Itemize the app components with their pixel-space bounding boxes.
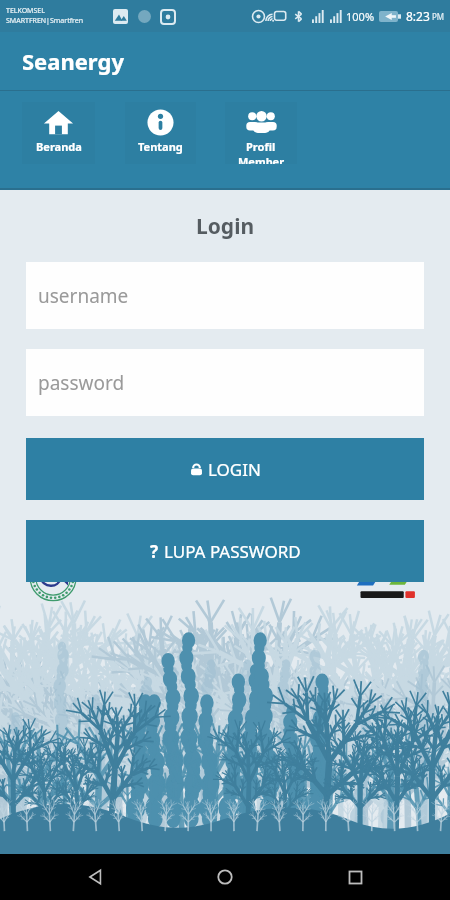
staticText: username — [38, 283, 129, 309]
staticText: Beranda — [36, 139, 82, 154]
button[interactable]: Home — [208, 860, 242, 894]
button[interactable]: Back — [78, 860, 112, 894]
staticText: TELKOMSEL — [6, 6, 45, 16]
staticText: SMARTFREN|Smartfren — [6, 16, 84, 26]
button[interactable]: Beranda — [22, 102, 95, 164]
staticText: 8:23 — [406, 8, 430, 24]
other: Tentang — [145, 107, 176, 138]
button[interactable]: password — [26, 349, 424, 416]
button[interactable]: LOGIN — [26, 438, 424, 500]
other: Profil Member — [246, 107, 277, 138]
staticText: Member — [238, 154, 285, 164]
button[interactable]: ? — [26, 520, 424, 582]
staticText: password — [38, 370, 125, 396]
staticText: 100% — [346, 9, 375, 24]
button[interactable]: Recent apps — [338, 860, 372, 894]
button[interactable]: username — [26, 262, 424, 329]
staticText: LUPA PASSWORD — [164, 540, 301, 563]
staticText: PM — [432, 11, 445, 22]
staticText: ? — [150, 540, 159, 563]
other: Beranda — [43, 107, 74, 138]
staticText: Seanergy — [22, 46, 124, 76]
staticText: Tentang — [138, 139, 183, 154]
staticText: Profil — [246, 139, 276, 154]
staticText: LOGIN — [208, 458, 261, 481]
button[interactable]: Tentang — [125, 102, 196, 164]
button[interactable]: Profil Member — [225, 102, 297, 164]
staticText: Login — [196, 212, 255, 241]
